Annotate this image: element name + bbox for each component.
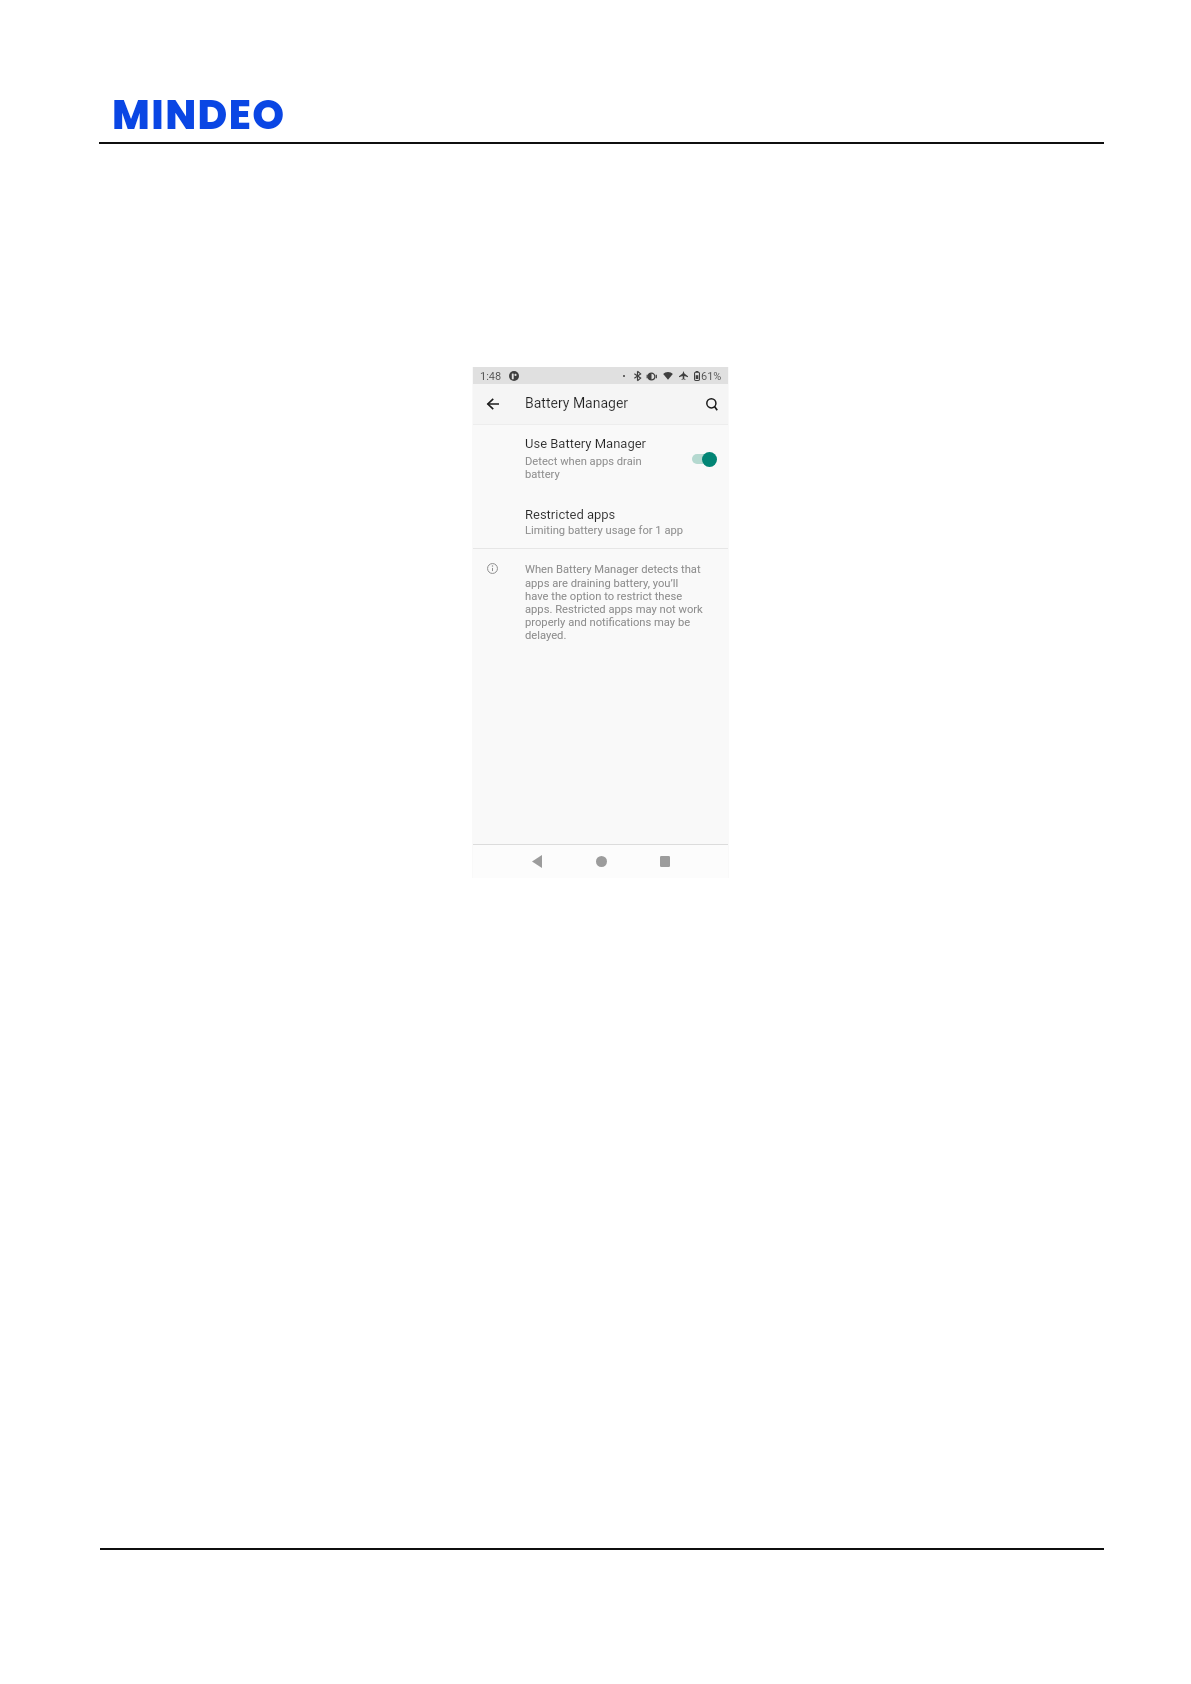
staticText: Detect when apps drain battery — [525, 455, 651, 481]
staticText: When Battery Manager detects that apps a… — [525, 563, 703, 641]
staticText: MINDEO — [112, 86, 286, 143]
button[interactable]: Restricted apps — [473, 503, 728, 539]
staticText: Battery Manager — [525, 395, 629, 411]
button[interactable]: Back — [524, 848, 550, 874]
button[interactable]: Use Battery Manager, on — [690, 451, 717, 467]
button[interactable]: Navigate up — [480, 391, 506, 417]
staticText: Limiting battery usage for 1 app — [525, 524, 684, 537]
button[interactable]: Search — [699, 391, 725, 417]
staticText: Use Battery Manager — [525, 436, 646, 451]
button[interactable]: Home — [588, 848, 614, 874]
staticText: 1:48 — [480, 370, 502, 383]
staticText: Restricted apps — [525, 507, 616, 522]
button[interactable]: Use Battery Manager — [473, 432, 728, 484]
staticText: 61% — [701, 370, 722, 383]
button[interactable]: Recent apps — [652, 848, 678, 874]
